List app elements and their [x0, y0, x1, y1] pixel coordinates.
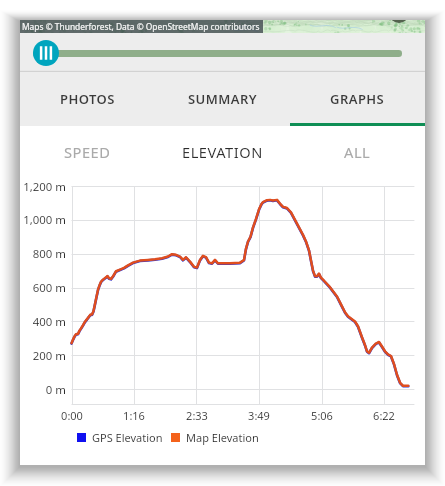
button[interactable]: Playback position	[33, 40, 59, 66]
staticText: 1,200 m	[20, 179, 66, 195]
staticText: SUMMARY	[188, 90, 258, 108]
staticText: Map Elevation	[186, 430, 259, 445]
staticText: 600 m	[20, 280, 66, 296]
staticText: 5:06	[302, 408, 342, 423]
staticText: ELEVATION	[182, 142, 263, 162]
button[interactable]: ELEVATION	[155, 128, 290, 175]
staticText: Maps © Thunderforest, Data © OpenStreetM…	[22, 21, 260, 32]
staticText: 800 m	[20, 246, 66, 262]
staticText: 1:16	[114, 408, 154, 423]
staticText: 3:49	[239, 408, 279, 423]
staticText: SPEED	[64, 142, 111, 162]
staticText: 1,000 m	[20, 212, 66, 228]
staticText: 0:00	[52, 408, 92, 423]
button[interactable]: GRAPHS	[290, 72, 425, 126]
staticText: 2:33	[177, 408, 217, 423]
staticText: 400 m	[20, 314, 66, 330]
staticText: ALL	[344, 142, 371, 162]
button[interactable]: SUMMARY	[155, 72, 290, 126]
button[interactable]: ALL	[290, 128, 425, 175]
staticText: GPS Elevation	[92, 430, 163, 445]
button[interactable]: PHOTOS	[20, 72, 155, 126]
staticText: GRAPHS	[330, 90, 385, 108]
staticText: 200 m	[20, 348, 66, 364]
button[interactable]: SPEED	[20, 128, 155, 175]
staticText: 6:22	[364, 408, 404, 423]
staticText: 0 m	[20, 382, 66, 398]
staticText: PHOTOS	[60, 90, 115, 108]
